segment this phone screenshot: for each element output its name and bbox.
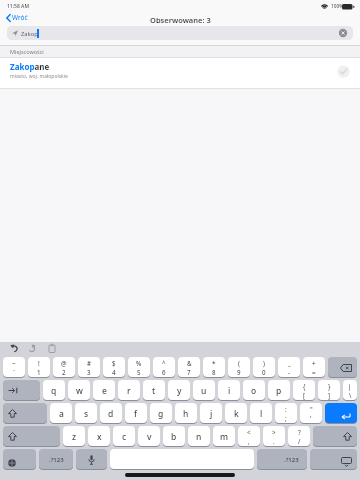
button[interactable]: c bbox=[113, 426, 135, 447]
button[interactable]: : bbox=[275, 403, 297, 424]
button[interactable]: .?123 bbox=[257, 449, 307, 470]
button[interactable]: { bbox=[293, 380, 315, 401]
staticText: 5 bbox=[137, 368, 141, 376]
button[interactable]: ( bbox=[228, 357, 250, 378]
button[interactable] bbox=[337, 65, 350, 78]
staticText: = bbox=[312, 368, 316, 376]
staticText: .?123 bbox=[49, 456, 64, 464]
button[interactable] bbox=[28, 344, 36, 352]
button[interactable]: % bbox=[128, 357, 150, 378]
button[interactable]: ? bbox=[288, 426, 310, 447]
button[interactable] bbox=[10, 344, 18, 352]
button[interactable]: r bbox=[118, 380, 140, 401]
button[interactable] bbox=[328, 357, 357, 378]
staticText: t bbox=[152, 385, 156, 397]
button[interactable] bbox=[310, 449, 357, 470]
button[interactable]: ) bbox=[253, 357, 275, 378]
button[interactable]: q bbox=[43, 380, 65, 401]
button[interactable]: o bbox=[243, 380, 265, 401]
staticText: $ bbox=[112, 359, 116, 367]
button[interactable] bbox=[0, 57, 360, 88]
button[interactable]: k bbox=[225, 403, 247, 424]
staticText: 100% bbox=[331, 3, 344, 10]
staticText: v bbox=[147, 431, 152, 443]
button[interactable] bbox=[3, 426, 60, 447]
button[interactable] bbox=[313, 426, 357, 447]
staticText: c bbox=[122, 431, 127, 443]
button[interactable]: > bbox=[263, 426, 285, 447]
staticText: Miejscowości bbox=[10, 48, 44, 55]
button[interactable] bbox=[110, 449, 254, 470]
staticText: j bbox=[210, 408, 213, 420]
button[interactable]: w bbox=[68, 380, 90, 401]
button[interactable]: d bbox=[100, 403, 122, 424]
staticText: 3 bbox=[87, 368, 91, 376]
staticText: \ bbox=[349, 391, 352, 399]
staticText: ! bbox=[38, 359, 40, 367]
button[interactable]: n bbox=[188, 426, 210, 447]
button[interactable]: m bbox=[213, 426, 235, 447]
staticText: ( bbox=[238, 359, 240, 367]
button[interactable]: Wróć bbox=[4, 12, 64, 24]
button[interactable]: g bbox=[150, 403, 172, 424]
button[interactable]: < bbox=[238, 426, 260, 447]
button[interactable]: h bbox=[175, 403, 197, 424]
button[interactable]: & bbox=[178, 357, 200, 378]
staticText: d bbox=[108, 408, 114, 420]
button[interactable]: x bbox=[88, 426, 110, 447]
button[interactable]: e bbox=[93, 380, 115, 401]
staticText: x bbox=[97, 431, 102, 443]
button[interactable]: ~ bbox=[3, 357, 25, 378]
button[interactable]: a bbox=[50, 403, 72, 424]
button[interactable]: y bbox=[168, 380, 190, 401]
staticText: ~ bbox=[12, 359, 16, 367]
button[interactable]: " bbox=[300, 403, 322, 424]
button[interactable] bbox=[3, 449, 36, 470]
button[interactable]: $ bbox=[103, 357, 125, 378]
button[interactable]: u bbox=[193, 380, 215, 401]
button[interactable]: * bbox=[203, 357, 225, 378]
button[interactable]: l bbox=[250, 403, 272, 424]
staticText: % bbox=[136, 359, 142, 367]
button[interactable]: p bbox=[268, 380, 290, 401]
staticText: n bbox=[196, 431, 202, 443]
button[interactable]: + bbox=[303, 357, 325, 378]
staticText: f bbox=[134, 408, 138, 420]
button[interactable] bbox=[325, 403, 357, 424]
button[interactable]: } bbox=[318, 380, 340, 401]
button[interactable] bbox=[338, 28, 348, 38]
staticText: < bbox=[247, 428, 251, 436]
button[interactable]: ! bbox=[28, 357, 50, 378]
button[interactable]: f bbox=[125, 403, 147, 424]
button[interactable]: _ bbox=[278, 357, 300, 378]
button[interactable]: b bbox=[163, 426, 185, 447]
button[interactable] bbox=[76, 449, 107, 470]
staticText: 1 bbox=[37, 368, 41, 376]
button[interactable] bbox=[3, 403, 47, 424]
button[interactable]: j bbox=[200, 403, 222, 424]
button[interactable] bbox=[48, 344, 56, 353]
staticText: } bbox=[328, 382, 331, 390]
button[interactable]: | bbox=[343, 380, 357, 401]
staticText: 2 bbox=[62, 368, 66, 376]
staticText: @ bbox=[61, 359, 67, 367]
staticText: * bbox=[212, 359, 216, 367]
staticText: # bbox=[87, 359, 91, 367]
button[interactable]: Zakop bbox=[7, 26, 353, 40]
button[interactable] bbox=[3, 380, 40, 401]
button[interactable]: .?123 bbox=[39, 449, 73, 470]
staticText: ] bbox=[328, 391, 331, 399]
button[interactable]: v bbox=[138, 426, 160, 447]
button[interactable]: i bbox=[218, 380, 240, 401]
staticText: w bbox=[76, 385, 83, 397]
button[interactable]: # bbox=[78, 357, 100, 378]
staticText: ? bbox=[298, 428, 301, 436]
staticText: z bbox=[72, 431, 77, 443]
button[interactable]: z bbox=[63, 426, 85, 447]
staticText: ' bbox=[310, 414, 312, 422]
button[interactable]: s bbox=[75, 403, 97, 424]
staticText: { bbox=[303, 382, 306, 390]
button[interactable]: ^ bbox=[153, 357, 175, 378]
button[interactable]: @ bbox=[53, 357, 75, 378]
button[interactable]: t bbox=[143, 380, 165, 401]
